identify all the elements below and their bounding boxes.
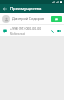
button[interactable]: Message	[51, 16, 62, 22]
staticText: Мобильный	[10, 32, 26, 36]
button[interactable]: Video call	[56, 28, 62, 34]
staticText: Дмитрий Сидоров	[12, 16, 51, 21]
button[interactable]: +998 (91) 000-00-00	[0, 25, 64, 36]
button[interactable]: Back	[0, 4, 9, 13]
staticText: Преимущества	[10, 6, 42, 12]
staticText: +998 (91) 000-00-00	[10, 26, 42, 31]
button[interactable]: Дмитрий Сидоров	[0, 13, 64, 24]
button[interactable]: Call	[49, 28, 55, 34]
